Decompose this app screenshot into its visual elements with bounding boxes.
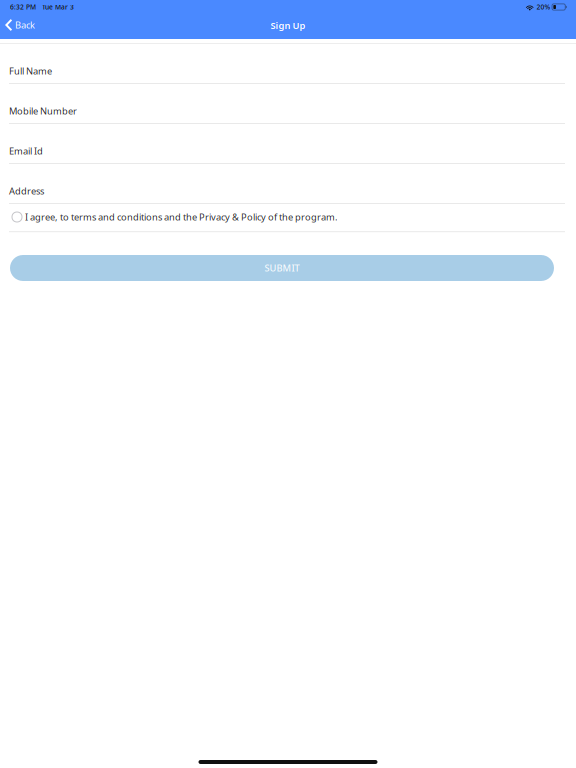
staticText: SUBMIT — [264, 262, 299, 274]
staticText: Sign Up — [270, 19, 305, 32]
staticText: I agree, to terms and conditions and the… — [25, 211, 338, 223]
staticText: Tue Mar 3 — [42, 3, 74, 11]
staticText: Email Id — [9, 145, 43, 157]
button[interactable]: Back — [0, 18, 43, 35]
staticText: Full Name — [9, 65, 52, 77]
staticText: Mobile Number — [9, 105, 77, 117]
button[interactable]: SUBMIT — [10, 255, 554, 281]
staticText: Address — [9, 185, 44, 197]
button[interactable]: I agree, to terms and conditions and the… — [0, 204, 576, 231]
staticText: 20% — [536, 3, 550, 11]
staticText: 6:32 PM — [10, 3, 36, 11]
staticText: Back — [15, 19, 35, 31]
